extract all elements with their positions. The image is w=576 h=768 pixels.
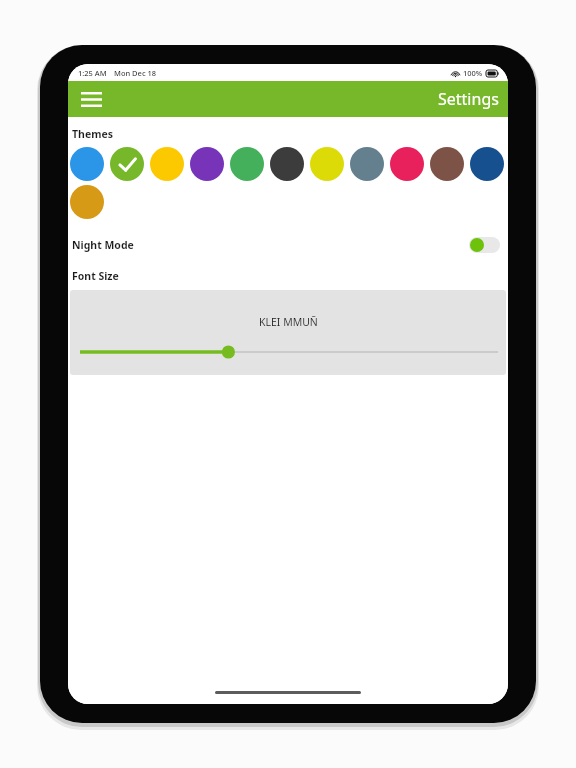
button[interactable]: KLEI MMUÑ xyxy=(70,290,506,375)
button[interactable]: Night Mode xyxy=(68,234,508,256)
button[interactable]: Theme color 2 xyxy=(110,147,144,181)
button[interactable]: Night Mode toggle xyxy=(469,237,500,253)
button[interactable]: Theme color 7 xyxy=(310,147,344,181)
button[interactable]: Theme color 9 xyxy=(390,147,424,181)
staticText: Settings xyxy=(438,88,499,110)
staticText: KLEI MMUÑ xyxy=(259,315,318,329)
button[interactable]: Theme color 6 xyxy=(270,147,304,181)
staticText: Themes xyxy=(72,127,113,141)
button[interactable]: Font size slider xyxy=(80,345,498,359)
button[interactable]: Theme color 4 xyxy=(190,147,224,181)
staticText: 100% xyxy=(463,68,483,78)
button[interactable]: Theme color 3 xyxy=(150,147,184,181)
button[interactable]: Theme color 11 xyxy=(470,147,504,181)
staticText: Font Size xyxy=(72,269,119,283)
button[interactable]: Theme color 10 xyxy=(430,147,464,181)
button[interactable]: Theme color 8 xyxy=(350,147,384,181)
button[interactable]: Open navigation menu xyxy=(76,84,106,114)
button[interactable]: Theme color 5 xyxy=(230,147,264,181)
staticText: Night Mode xyxy=(72,238,134,252)
button[interactable]: Theme color 12 xyxy=(70,185,104,219)
staticText: Mon Dec 18 xyxy=(114,68,157,78)
button[interactable]: Theme color 1 xyxy=(70,147,104,181)
staticText: 1:25 AM xyxy=(78,68,107,78)
